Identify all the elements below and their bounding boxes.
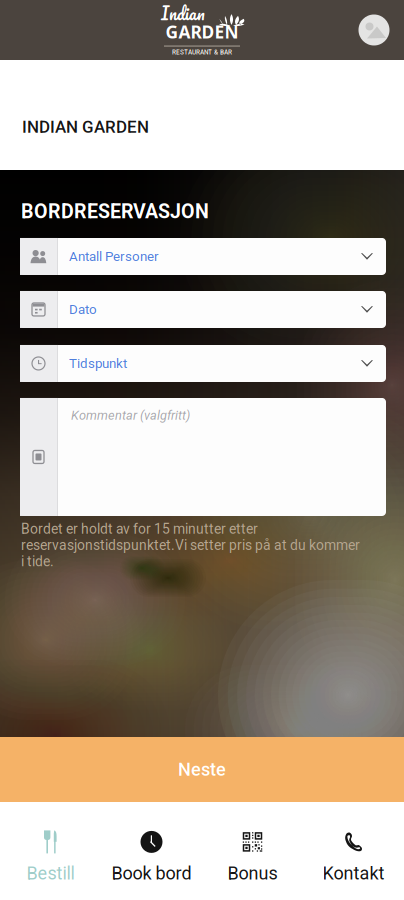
- button[interactable]: Neste: [0, 737, 404, 802]
- staticText: Kommentar (valgfritt): [71, 408, 190, 423]
- staticText: Bonus: [227, 863, 277, 884]
- staticText: Kontakt: [322, 863, 384, 884]
- staticText: Bordet er holdt av for 15 minutter etter…: [21, 521, 360, 570]
- staticText: Tidspunkt: [69, 356, 127, 371]
- staticText: Neste: [178, 759, 226, 780]
- button[interactable]: Antall Personer: [20, 238, 386, 275]
- button[interactable]: Kontakt: [303, 802, 404, 900]
- button[interactable]: Book bord: [101, 802, 202, 900]
- staticText: Bestill: [26, 863, 74, 884]
- staticText: BORDRESERVASJON: [21, 200, 209, 223]
- staticText: INDIAN GARDEN: [22, 117, 149, 137]
- staticText: GARDEN: [165, 20, 238, 43]
- button[interactable]: Bonus: [202, 802, 303, 900]
- staticText: Dato: [69, 302, 97, 317]
- button[interactable]: Dato: [20, 291, 386, 328]
- button[interactable]: Kommentar (valgfritt): [20, 398, 386, 516]
- staticText: Antall Personer: [69, 249, 159, 264]
- button[interactable]: Tidspunkt: [20, 345, 386, 382]
- staticText: Indian: [161, 0, 205, 27]
- staticText: Book bord: [111, 863, 191, 884]
- staticText: RESTAURANT & BAR: [172, 49, 232, 56]
- button[interactable]: Bestill: [0, 802, 101, 900]
- button[interactable]: Profile: [352, 8, 396, 52]
